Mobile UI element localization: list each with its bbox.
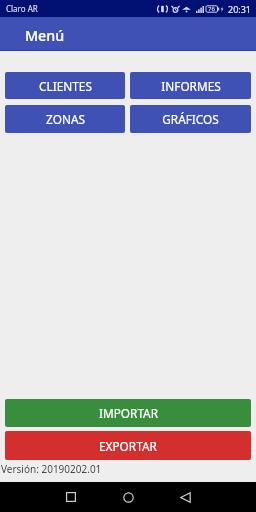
staticText: Versión: 20190202.01 (1, 462, 102, 476)
staticText: ZONAS (46, 111, 85, 127)
staticText: IMPORTAR (99, 405, 158, 421)
button[interactable]: GRÁFICOS (130, 105, 251, 133)
staticText: EXPORTAR (99, 438, 157, 454)
staticText: 76 (208, 5, 215, 13)
button[interactable]: EXPORTAR (5, 431, 251, 460)
staticText: CLIENTES (39, 78, 92, 94)
button[interactable]: INFORMES (130, 72, 251, 99)
staticText: Menú (25, 26, 65, 45)
button[interactable]: Home (113, 482, 143, 512)
button[interactable]: Back (170, 482, 200, 512)
staticText: INFORMES (161, 78, 221, 94)
button[interactable]: ZONAS (5, 105, 125, 133)
button[interactable]: CLIENTES (5, 72, 125, 99)
button[interactable]: IMPORTAR (5, 399, 251, 427)
staticText: 20:31 (228, 3, 252, 15)
staticText: Claro AR (6, 3, 38, 14)
button[interactable]: Recents (56, 482, 86, 512)
staticText: GRÁFICOS (162, 111, 219, 127)
